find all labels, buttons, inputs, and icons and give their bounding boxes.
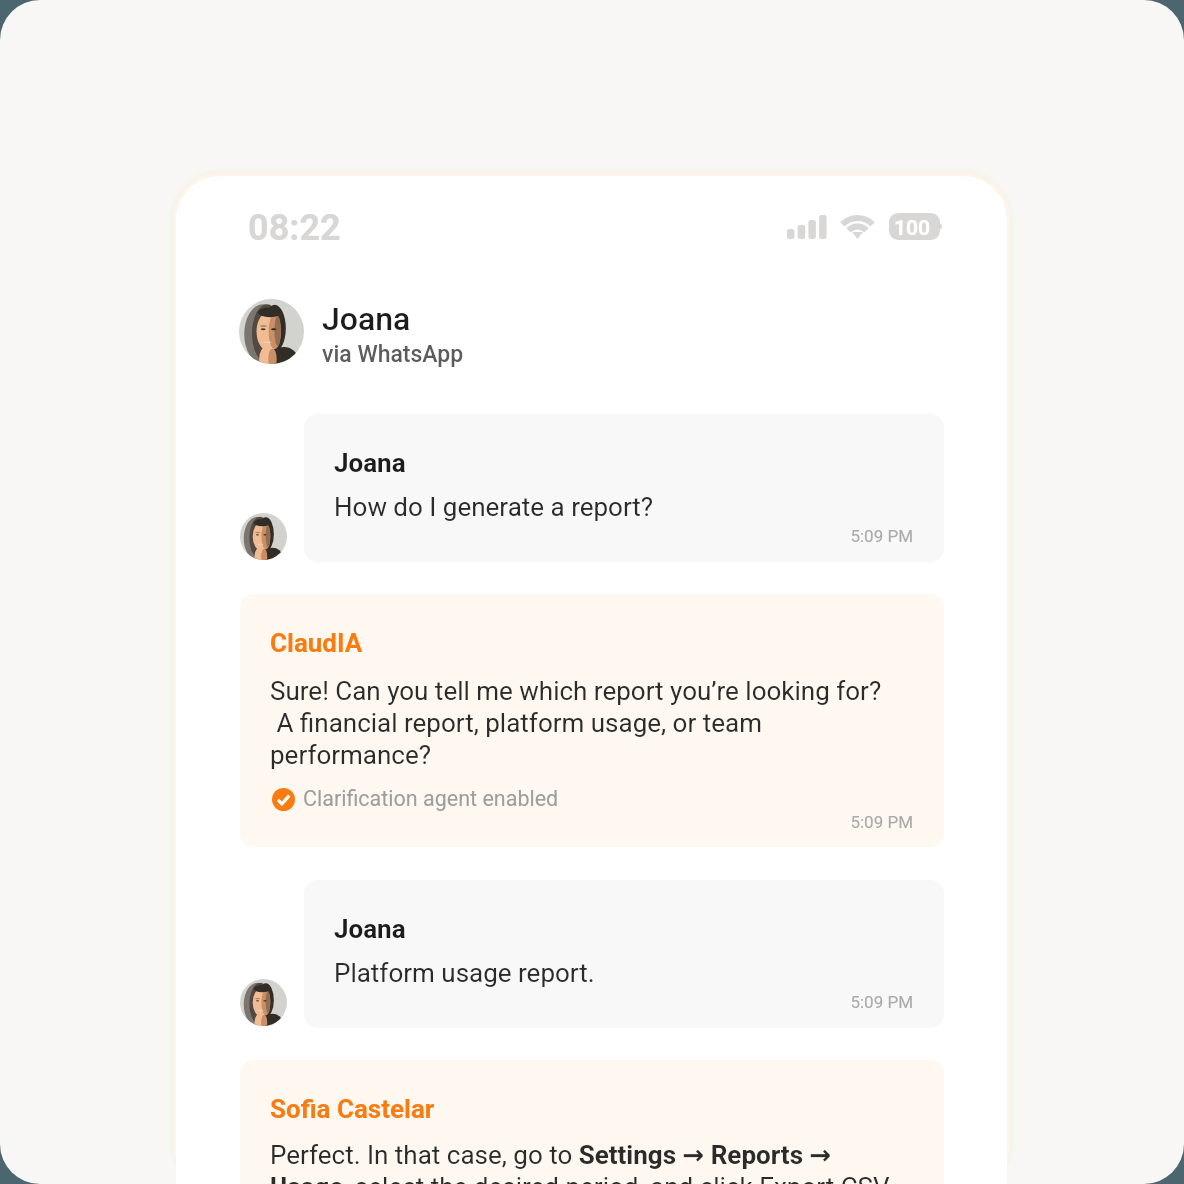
staticText: 5:09 PM — [270, 812, 913, 832]
other: Joana profile photo — [240, 513, 287, 560]
button[interactable]: Joana — [304, 880, 944, 1028]
staticText: 5:09 PM — [334, 992, 913, 1012]
staticText: Joana — [334, 914, 406, 944]
staticText: Joana — [322, 300, 411, 338]
other: Joana profile photo — [239, 299, 304, 364]
staticText: 100 — [894, 216, 931, 241]
button[interactable]: Sofia Castelar — [240, 1060, 944, 1184]
staticText: ClaudIA — [270, 628, 363, 658]
staticText: 5:09 PM — [334, 526, 913, 546]
other: Joana profile photo — [240, 979, 287, 1026]
staticText: Sure! Can you tell me which report you’r… — [270, 676, 913, 771]
staticText: Platform usage report. — [334, 958, 595, 988]
button[interactable]: Joana — [304, 414, 944, 562]
staticText: Joana — [334, 448, 406, 478]
staticText: Sofia Castelar — [270, 1094, 435, 1124]
button[interactable]: ClaudIA — [240, 594, 944, 847]
button[interactable]: Joana profile photo — [239, 300, 464, 368]
staticText: Clarification agent enabled — [303, 786, 559, 811]
other: Clarification agent enabled — [272, 788, 295, 811]
staticText: Perfect. In that case, go to Settings → … — [270, 1140, 913, 1184]
other: Signal, Wi-Fi and battery status — [787, 213, 947, 241]
staticText: 08:22 — [248, 207, 341, 249]
staticText: via WhatsApp — [322, 341, 464, 368]
staticText: How do I generate a report? — [334, 492, 654, 522]
